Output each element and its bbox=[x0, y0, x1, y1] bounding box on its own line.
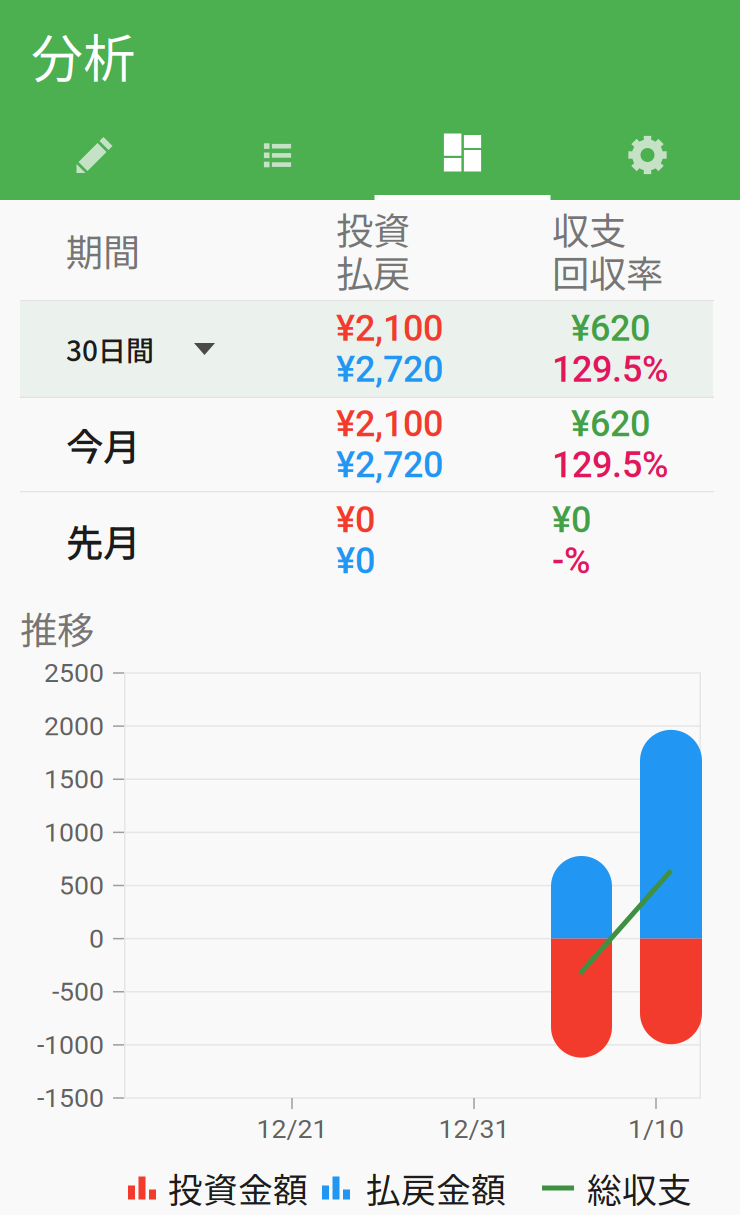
staticText: 2500 bbox=[44, 657, 104, 689]
staticText: -1000 bbox=[37, 1029, 104, 1060]
staticText: ¥620 bbox=[571, 307, 650, 350]
staticText: -1500 bbox=[37, 1082, 104, 1114]
staticText: 収支 bbox=[552, 201, 626, 256]
staticText: ¥2,720 bbox=[336, 444, 443, 486]
button[interactable]: 設定 bbox=[555, 110, 740, 200]
staticText: 分析 bbox=[31, 17, 135, 93]
staticText: 129.5% bbox=[552, 444, 669, 486]
staticText: ¥2,100 bbox=[336, 307, 443, 350]
staticText: 0 bbox=[89, 923, 104, 954]
staticText: ¥2,100 bbox=[336, 403, 443, 445]
staticText: ¥0 bbox=[552, 499, 591, 541]
staticText: 30日間 bbox=[66, 329, 154, 369]
staticText: 2000 bbox=[44, 710, 104, 742]
staticText: ¥2,720 bbox=[336, 348, 443, 391]
staticText: 129.5% bbox=[552, 348, 669, 391]
button[interactable]: 分析 bbox=[370, 110, 555, 200]
staticText: 回収率 bbox=[552, 244, 663, 299]
staticText: 払戻 bbox=[336, 244, 410, 299]
staticText: 払戻金額 bbox=[366, 1163, 506, 1213]
staticText: 総収支 bbox=[587, 1163, 692, 1213]
staticText: 期間 bbox=[66, 223, 140, 277]
staticText: ¥0 bbox=[336, 540, 375, 582]
staticText: ¥620 bbox=[571, 403, 650, 445]
staticText: 推移 bbox=[20, 601, 94, 655]
staticText: 今月 bbox=[66, 417, 140, 472]
button[interactable]: 今月 bbox=[0, 398, 740, 491]
staticText: 先月 bbox=[66, 513, 140, 568]
staticText: 1000 bbox=[44, 817, 104, 848]
button[interactable]: 一覧 bbox=[185, 110, 370, 200]
staticText: 投資金額 bbox=[168, 1163, 308, 1213]
staticText: ¥0 bbox=[336, 499, 375, 541]
staticText: -500 bbox=[52, 976, 104, 1007]
staticText: 12/21 bbox=[256, 1113, 327, 1145]
staticText: 1/10 bbox=[628, 1113, 684, 1145]
button[interactable]: 30日間 bbox=[0, 301, 740, 396]
staticText: 12/31 bbox=[438, 1113, 509, 1145]
staticText: 投資 bbox=[336, 201, 410, 256]
button[interactable]: 入力 bbox=[0, 110, 185, 200]
staticText: 500 bbox=[59, 870, 104, 901]
staticText: 1500 bbox=[44, 764, 104, 795]
staticText: -% bbox=[552, 540, 591, 582]
button[interactable]: 先月 bbox=[0, 492, 740, 588]
